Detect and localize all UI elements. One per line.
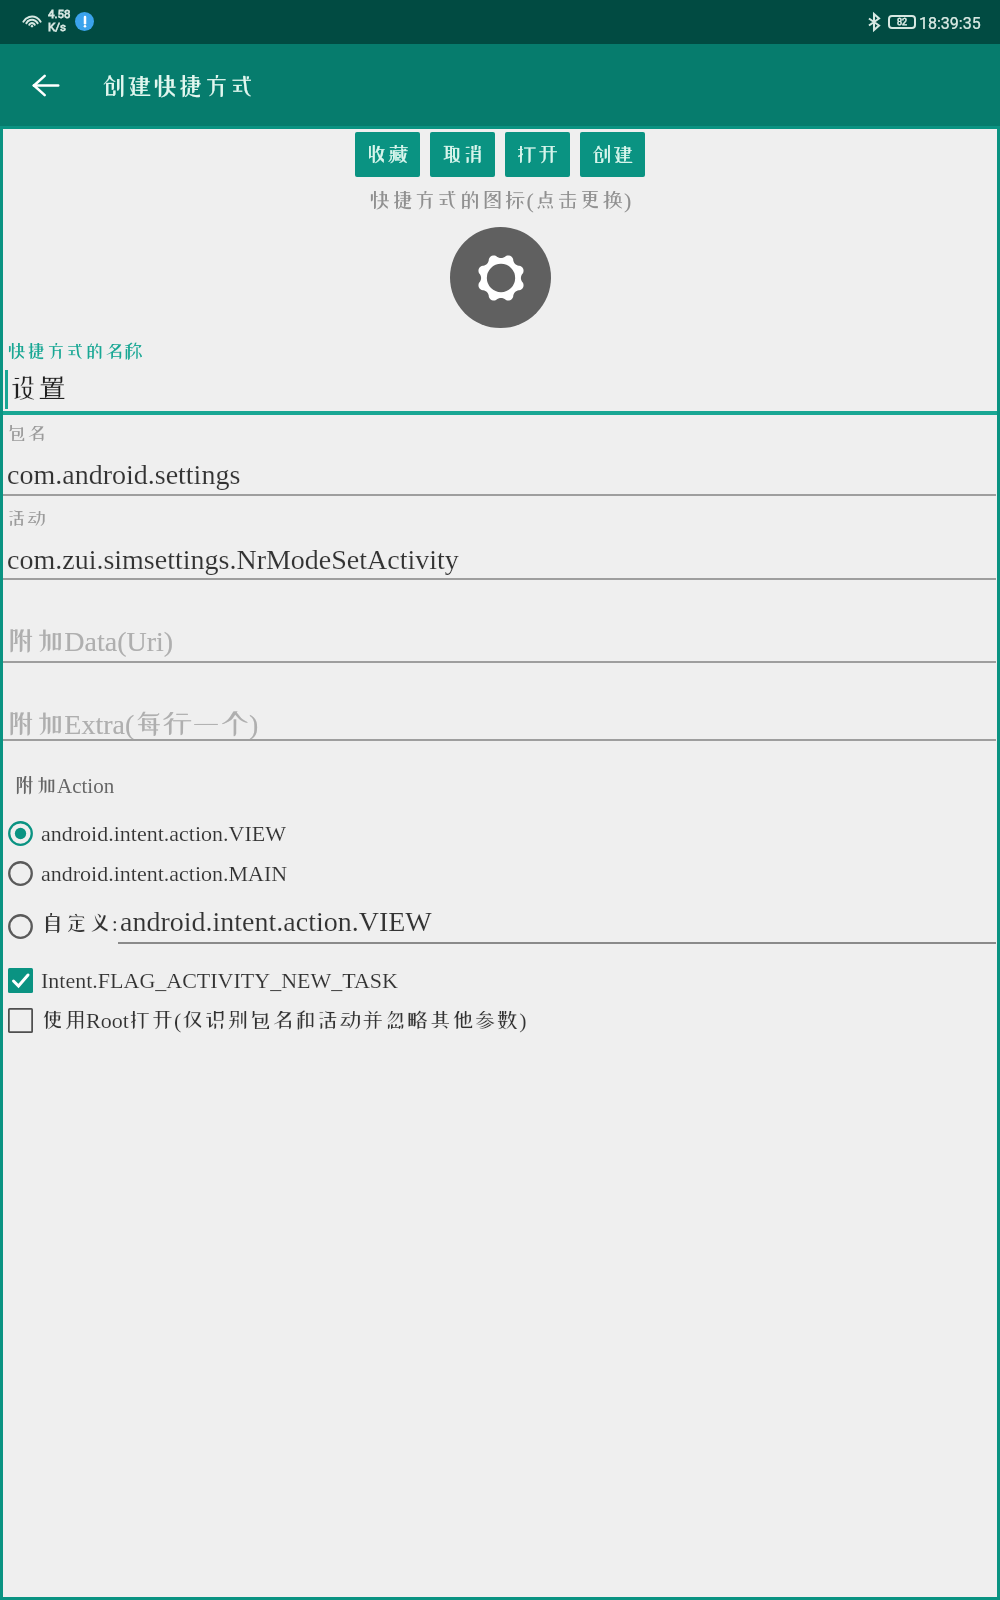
button[interactable]: 使用Root打开(仅识别包名和活动并忽略其他参数) <box>0 1000 1000 1040</box>
staticText: 82 <box>897 17 908 28</box>
staticText: 自定义: <box>41 911 118 936</box>
staticText: 附加Extra(每行一个) <box>7 709 259 740</box>
button[interactable]: 打开 <box>505 132 570 177</box>
button[interactable]: 收藏 <box>355 132 420 177</box>
staticText: 收藏 <box>366 144 410 165</box>
staticText: 取消 <box>441 144 485 165</box>
staticText: 附加Action <box>14 774 115 797</box>
staticText: 快捷方式的图标(点击更换) <box>0 188 1000 212</box>
staticText: android.intent.action.VIEW <box>120 906 432 937</box>
staticText: android.intent.action.VIEW <box>41 821 286 845</box>
button[interactable]: Intent.FLAG_ACTIVITY_NEW_TASK <box>0 960 1000 1000</box>
button[interactable]: 创建 <box>580 132 645 177</box>
staticText: K/s <box>48 20 66 33</box>
staticText: 活动 <box>7 508 46 527</box>
staticText: 创建快捷方式 <box>101 73 255 98</box>
button[interactable]: Back <box>0 44 92 126</box>
staticText: com.zui.simsettings.NrModeSetActivity <box>7 544 459 575</box>
staticText: Intent.FLAG_ACTIVITY_NEW_TASK <box>41 968 398 992</box>
staticText: 创建 <box>591 144 635 165</box>
staticText: 打开 <box>516 144 560 165</box>
staticText: android.intent.action.MAIN <box>41 861 288 885</box>
staticText: 4.58 <box>48 7 71 20</box>
button[interactable]: Change shortcut icon <box>450 227 551 328</box>
staticText: 快捷方式的名称 <box>7 341 144 360</box>
staticText: com.android.settings <box>7 459 241 490</box>
button[interactable]: 取消 <box>430 132 495 177</box>
button[interactable]: android.intent.action.MAIN <box>0 852 1000 894</box>
staticText: 包名 <box>7 423 46 442</box>
staticText: 设置 <box>9 373 67 401</box>
staticText: 18:39:35 <box>919 14 981 33</box>
staticText: 附加Data(Uri) <box>7 626 174 657</box>
staticText: 使用Root打开(仅识别包名和活动并忽略其他参数) <box>41 1008 527 1032</box>
button[interactable]: android.intent.action.VIEW <box>0 812 1000 854</box>
button[interactable]: Custom action <box>7 913 34 940</box>
